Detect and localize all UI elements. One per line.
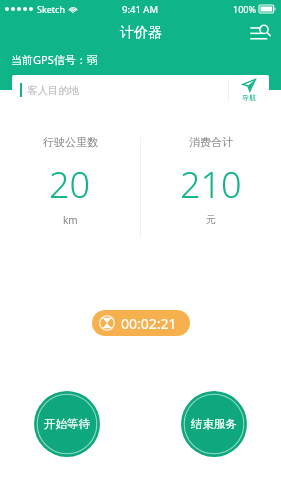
staticText: 元: [206, 213, 216, 226]
staticText: km: [63, 213, 78, 227]
button[interactable]: 00:02:21: [92, 310, 190, 336]
staticText: 00:02:21: [121, 314, 177, 333]
staticText: 当前GPS信号：弱: [11, 52, 98, 67]
staticText: 20: [49, 160, 91, 209]
staticText: 210: [180, 160, 242, 209]
staticText: 客人目的地: [27, 84, 228, 97]
button[interactable]: Search records: [247, 20, 273, 46]
button[interactable]: 开始等待: [34, 391, 100, 457]
staticText: 计价器: [120, 24, 162, 42]
button[interactable]: Navigate: [229, 75, 269, 105]
staticText: 行驶公里数: [43, 135, 98, 149]
staticText: 结束服务: [191, 417, 237, 431]
button[interactable]: 客人目的地: [12, 75, 269, 105]
staticText: 开始等待: [44, 417, 90, 431]
staticText: 100%: [233, 3, 256, 15]
button[interactable]: 结束服务: [181, 391, 247, 457]
staticText: Sketch: [37, 3, 65, 15]
staticText: 消费合计: [189, 135, 233, 149]
staticText: 9:41 AM: [122, 3, 159, 16]
staticText: 导航: [242, 93, 256, 102]
